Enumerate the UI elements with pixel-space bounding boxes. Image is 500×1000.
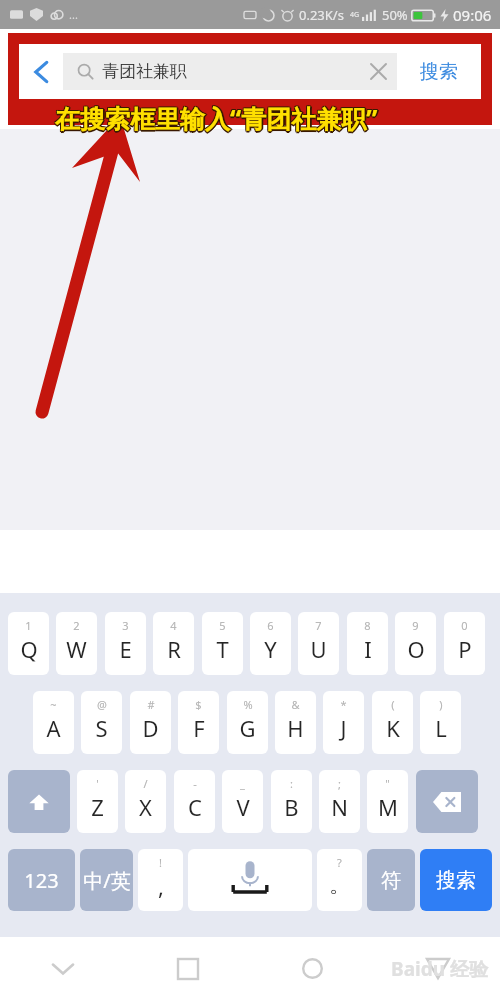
button[interactable]: Shift xyxy=(8,770,70,833)
staticText: 在搜索框里输入“青团社兼职” xyxy=(54,102,377,136)
staticText: S xyxy=(95,713,108,743)
staticText: X xyxy=(139,792,152,822)
staticText: A xyxy=(46,713,61,743)
staticText: ( xyxy=(391,697,395,712)
staticText: 6 xyxy=(267,618,274,633)
staticText: 在搜索框里输入“青团社兼职” xyxy=(55,101,378,135)
button[interactable]: ) xyxy=(420,691,461,754)
button[interactable]: ; xyxy=(319,770,360,833)
button[interactable]: Back xyxy=(19,44,63,99)
button[interactable]: Clear xyxy=(359,53,397,90)
button[interactable]: - xyxy=(174,770,215,833)
staticText: * xyxy=(340,697,347,712)
button[interactable]: 5 xyxy=(202,612,243,675)
staticText: P xyxy=(458,634,472,664)
staticText: 4 xyxy=(170,618,177,633)
button[interactable]: / xyxy=(125,770,166,833)
button[interactable]: # xyxy=(130,691,171,754)
staticText: K xyxy=(386,713,400,743)
button[interactable]: 9 xyxy=(395,612,436,675)
button[interactable]: ! xyxy=(138,849,183,911)
staticText: O xyxy=(407,634,425,664)
staticText: 1 xyxy=(25,618,32,633)
staticText: 0.23K/s xyxy=(299,6,344,24)
button[interactable]: ' xyxy=(77,770,118,833)
button[interactable]: Back xyxy=(375,937,500,1000)
staticText: J xyxy=(340,713,347,743)
staticText: N xyxy=(331,792,348,822)
staticText: 在搜索框里输入“青团社兼职” xyxy=(56,102,379,136)
button[interactable]: 7 xyxy=(298,612,339,675)
staticText: ! xyxy=(159,855,162,870)
staticText: 09:06 xyxy=(453,5,492,25)
staticText: ) xyxy=(439,697,443,712)
button[interactable]: 2 xyxy=(56,612,97,675)
button[interactable]: % xyxy=(227,691,268,754)
staticText: _ xyxy=(240,776,245,791)
staticText: Q xyxy=(20,634,38,664)
button[interactable]: Delete xyxy=(416,770,478,833)
button[interactable]: 青团社兼职 xyxy=(63,53,397,90)
button[interactable]: : xyxy=(271,770,312,833)
staticText: , xyxy=(158,871,164,901)
staticText: / xyxy=(143,776,148,791)
button[interactable]: Space xyxy=(188,849,312,911)
staticText: 青团社兼职 xyxy=(102,61,187,82)
staticText: - xyxy=(193,776,197,791)
staticText: I xyxy=(364,634,372,664)
staticText: H xyxy=(287,713,304,743)
button[interactable]: _ xyxy=(222,770,263,833)
button[interactable]: @ xyxy=(81,691,122,754)
staticText: 7 xyxy=(315,618,322,633)
staticText: ... xyxy=(69,7,78,22)
staticText: # xyxy=(147,697,155,712)
button[interactable]: 1 xyxy=(8,612,49,675)
button[interactable]: ~ xyxy=(33,691,74,754)
button[interactable]: ( xyxy=(372,691,413,754)
staticText: 符 xyxy=(381,868,401,893)
staticText: 123 xyxy=(24,867,59,894)
staticText: 在搜索框里输入“青团社兼职” xyxy=(55,100,378,134)
staticText: 3 xyxy=(122,618,129,633)
button[interactable]: 0 xyxy=(444,612,485,675)
staticText: Z xyxy=(91,792,104,822)
button[interactable]: 3 xyxy=(105,612,146,675)
staticText: R xyxy=(167,634,181,664)
button[interactable]: * xyxy=(323,691,364,754)
staticText: W xyxy=(66,634,87,664)
staticText: 搜索 xyxy=(420,60,458,84)
button[interactable]: Recents xyxy=(125,937,250,1000)
staticText: & xyxy=(291,697,300,712)
button[interactable]: Home xyxy=(250,937,375,1000)
staticText: 2 xyxy=(73,618,80,633)
staticText: 4G xyxy=(350,10,360,20)
staticText: C xyxy=(188,792,202,822)
button[interactable]: 4 xyxy=(153,612,194,675)
button[interactable]: 符 xyxy=(367,849,415,911)
staticText: G xyxy=(239,713,256,743)
staticText: T xyxy=(216,634,229,664)
button[interactable]: 6 xyxy=(250,612,291,675)
button[interactable]: 搜索 xyxy=(420,849,492,911)
staticText: 50% xyxy=(382,6,408,24)
staticText: ? xyxy=(337,855,342,870)
button[interactable]: ? xyxy=(317,849,362,911)
staticText: @ xyxy=(97,697,107,712)
button[interactable]: 搜索 xyxy=(397,44,481,99)
staticText: 在搜索框里输入“青团社兼职” xyxy=(54,100,377,134)
button[interactable]: Hide keyboard xyxy=(0,937,125,1000)
staticText: D xyxy=(142,713,159,743)
staticText: $ xyxy=(195,697,202,712)
button[interactable]: " xyxy=(367,770,408,833)
button[interactable]: 中/英 xyxy=(80,849,133,911)
staticText: U xyxy=(310,634,327,664)
staticText: ' xyxy=(96,776,99,791)
staticText: 9 xyxy=(412,618,419,633)
staticText: 。 xyxy=(329,871,351,899)
button[interactable]: $ xyxy=(178,691,219,754)
button[interactable]: 8 xyxy=(347,612,388,675)
staticText: ; xyxy=(338,776,341,791)
staticText: 0 xyxy=(461,618,468,633)
button[interactable]: & xyxy=(275,691,316,754)
button[interactable]: 123 xyxy=(8,849,75,911)
